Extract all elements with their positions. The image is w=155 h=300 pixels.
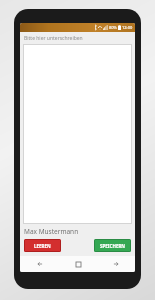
button[interactable]: Unterschriftsfeld (23, 44, 132, 224)
staticText: Max Mustermann (24, 227, 79, 236)
staticText: SPEICHERN (100, 243, 126, 249)
staticText: Bitte hier unterschreiben (24, 35, 83, 42)
staticText: 12:00 (122, 25, 133, 30)
button[interactable]: Recent apps (97, 256, 135, 272)
button[interactable]: LEEREN (24, 239, 61, 252)
staticText: 80% (109, 25, 117, 30)
button[interactable]: Back (20, 256, 59, 272)
button[interactable]: SPEICHERN (94, 239, 131, 252)
button[interactable]: Home (59, 256, 97, 272)
staticText: LEEREN (34, 243, 51, 249)
